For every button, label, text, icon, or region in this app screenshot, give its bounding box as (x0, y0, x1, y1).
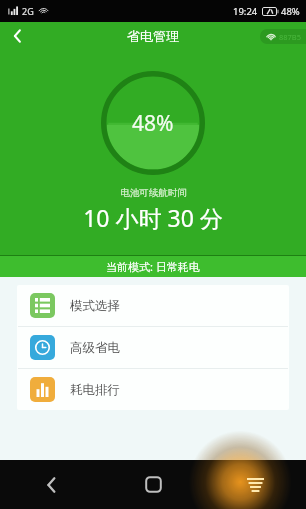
staticText: 耗电排行 (70, 382, 120, 398)
staticText: 48% (132, 109, 174, 138)
staticText: 2G (22, 5, 34, 17)
staticText: 电池可续航时间 (120, 187, 187, 199)
staticText: 48% (281, 5, 300, 18)
staticText: 19:24 (233, 5, 258, 18)
button[interactable]: 耗电排行 (17, 369, 289, 410)
button[interactable]: Menu (204, 460, 306, 509)
button[interactable]: Home (102, 460, 204, 509)
button[interactable]: 887B5 (260, 29, 306, 44)
staticText: 模式选择 (70, 298, 120, 314)
button[interactable]: Back (0, 460, 102, 509)
staticText: 高级省电 (70, 340, 120, 356)
staticText: 省电管理 (127, 28, 179, 44)
button[interactable]: 模式选择 (17, 285, 289, 326)
button[interactable]: Back (0, 22, 34, 50)
staticText: 当前模式: 日常耗电 (106, 259, 200, 274)
staticText: 10 小时 30 分 (83, 202, 223, 233)
staticText: 887B5 (279, 32, 302, 42)
button[interactable]: 当前模式: 日常耗电 (0, 256, 306, 277)
button[interactable]: 高级省电 (17, 327, 289, 368)
